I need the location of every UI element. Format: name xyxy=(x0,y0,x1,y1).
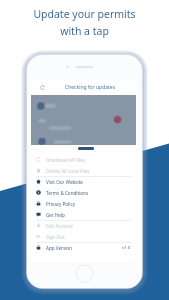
button[interactable]: Terms & Conditions xyxy=(31,187,136,198)
staticText: Download All Files xyxy=(46,157,86,163)
staticText: Update your permits with a tap xyxy=(0,7,169,38)
button[interactable]: Get Help xyxy=(31,209,136,220)
button[interactable]: Delete All Local Files xyxy=(31,165,136,176)
button[interactable]: App Version xyxy=(31,242,136,253)
staticText: Get Help xyxy=(46,212,65,218)
button[interactable]: Download All Files xyxy=(31,154,136,165)
staticText: Sign Out xyxy=(46,234,65,240)
button[interactable]: Visit Our Website xyxy=(31,176,136,187)
staticText: Visit Our Website xyxy=(46,179,83,185)
button[interactable]: Edit Account xyxy=(31,220,136,231)
button[interactable]: Sign Out xyxy=(31,231,136,242)
staticText: Delete All Local Files xyxy=(46,168,90,174)
staticText: Terms & Conditions xyxy=(46,190,89,196)
staticText: Privacy Policy xyxy=(46,201,75,207)
button[interactable]: Privacy Policy xyxy=(31,198,136,209)
staticText: Checking for updates xyxy=(65,84,116,91)
button[interactable]: Refresh xyxy=(36,80,48,95)
staticText: App Version xyxy=(46,245,72,251)
staticText: Edit Account xyxy=(46,223,73,229)
staticText: v1.0 xyxy=(122,245,131,251)
